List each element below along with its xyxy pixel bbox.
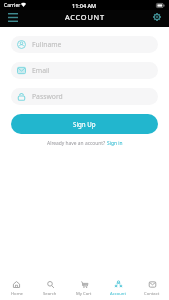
button[interactable]: Settings bbox=[147, 10, 169, 24]
staticText: Password bbox=[32, 92, 63, 101]
staticText: Home bbox=[11, 291, 23, 297]
staticText: Fullname bbox=[32, 40, 62, 49]
button[interactable]: Menu bbox=[0, 10, 24, 24]
button[interactable]: Email field bbox=[11, 62, 158, 79]
staticText: Sign Up bbox=[73, 120, 96, 128]
button[interactable]: Password field bbox=[11, 88, 158, 105]
button[interactable]: Home bbox=[0, 277, 33, 300]
button[interactable]: Sign in bbox=[107, 140, 123, 147]
button[interactable]: Contact bbox=[135, 277, 169, 300]
button[interactable]: Search bbox=[33, 277, 67, 300]
staticText: Search bbox=[43, 291, 57, 297]
staticText: Carrier bbox=[4, 2, 21, 9]
button[interactable]: My Cart bbox=[67, 277, 101, 300]
staticText: Already have an account? bbox=[47, 140, 107, 147]
staticText: 11:04 AM bbox=[72, 2, 97, 9]
staticText: ACCOUNT bbox=[65, 12, 105, 22]
button[interactable]: Fullname field bbox=[11, 36, 158, 53]
staticText: Email bbox=[32, 66, 50, 75]
staticText: Account bbox=[110, 291, 126, 297]
staticText: Contact bbox=[144, 291, 160, 297]
button[interactable]: Sign Up bbox=[11, 114, 158, 134]
staticText: My Cart bbox=[76, 291, 92, 297]
button[interactable]: Account bbox=[101, 277, 135, 300]
